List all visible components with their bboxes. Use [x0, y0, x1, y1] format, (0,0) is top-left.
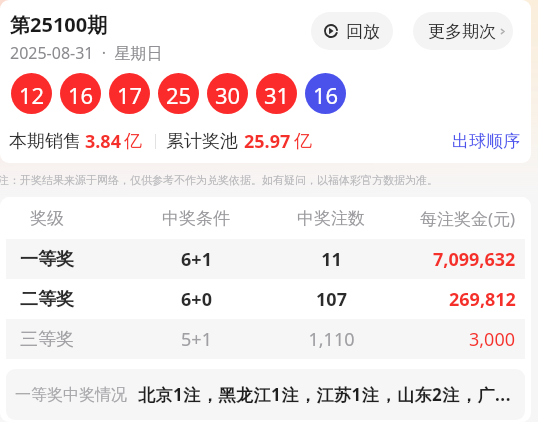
- staticText: 奖级: [30, 208, 64, 229]
- staticText: 亿: [294, 130, 312, 153]
- staticText: 7,099,632: [433, 247, 516, 272]
- staticText: 11: [321, 247, 342, 272]
- staticText: 2025-08-31 · 星期日: [10, 42, 163, 64]
- staticText: 25: [166, 80, 192, 110]
- staticText: 亿: [124, 130, 142, 153]
- staticText: 12: [19, 80, 45, 110]
- staticText: 3.84: [85, 129, 121, 154]
- staticText: 6+0: [181, 287, 212, 312]
- staticText: 1,110: [308, 327, 355, 352]
- staticText: 本期销售: [9, 130, 81, 153]
- button[interactable]: 回放: [311, 12, 393, 50]
- button[interactable]: 更多期次: [413, 12, 513, 50]
- staticText: 注：开奖结果来源于网络，仅供参考不作为兑奖依据。如有疑问，以福体彩官方数据为准。: [0, 173, 438, 187]
- staticText: 25.97: [244, 129, 291, 154]
- staticText: 每注奖金(元): [420, 207, 516, 230]
- staticText: 累计奖池: [166, 130, 238, 153]
- other: 更多期次: [497, 26, 508, 37]
- staticText: 回放: [346, 21, 380, 42]
- staticText: 二等奖: [20, 288, 74, 311]
- staticText: 30: [215, 80, 241, 110]
- staticText: 31: [264, 80, 290, 110]
- staticText: 第25100期: [10, 11, 108, 38]
- staticText: 一等奖中奖情况: [15, 385, 127, 405]
- staticText: 北京1注，黑龙江1注，江苏1注，山东2注，广...: [138, 383, 511, 406]
- staticText: 6+1: [181, 247, 212, 272]
- staticText: 出球顺序: [452, 131, 520, 152]
- staticText: 中奖注数: [297, 208, 365, 229]
- button[interactable]: 一等奖中奖情况: [6, 369, 525, 420]
- staticText: 16: [68, 80, 94, 110]
- staticText: 107: [316, 287, 347, 312]
- staticText: 16: [313, 80, 339, 110]
- staticText: 3,000: [469, 327, 516, 352]
- staticText: 三等奖: [20, 328, 74, 351]
- staticText: 17: [117, 80, 143, 110]
- button[interactable]: 出球顺序: [448, 125, 524, 158]
- staticText: 中奖条件: [162, 208, 230, 229]
- staticText: 更多期次: [428, 21, 496, 42]
- staticText: 5+1: [181, 327, 212, 352]
- staticText: 一等奖: [20, 248, 74, 271]
- staticText: 269,812: [449, 287, 516, 312]
